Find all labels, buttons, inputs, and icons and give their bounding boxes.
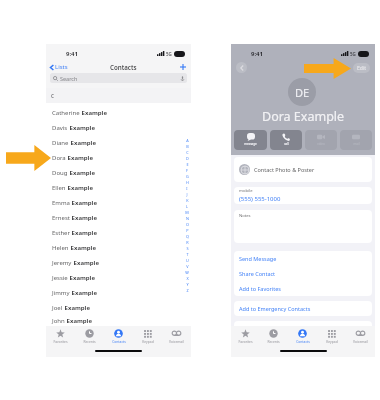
staticText: Contact Photo & Poster [254,166,315,173]
staticText: Example [66,154,93,162]
staticText: Contacts [110,63,137,71]
staticText: Emma [52,199,70,207]
staticText: Example [80,109,107,117]
staticText: X [186,276,189,281]
staticText: Ellen [52,184,66,192]
staticText: Keypad [142,339,154,343]
staticText: Recents [267,339,280,343]
staticText: Diane [52,139,69,147]
staticText: Example [70,214,97,222]
button[interactable]: Lists [49,62,69,72]
staticText: A [186,138,189,143]
staticText: E [186,162,189,167]
button[interactable]: Contacts [104,326,133,344]
button[interactable]: Favorites [46,326,75,344]
staticText: W [185,270,189,275]
button[interactable]: Back [236,62,247,73]
button[interactable]: video [305,130,337,150]
staticText: R [186,240,189,245]
staticText: Y [186,282,189,287]
button[interactable]: Add contact [178,62,188,72]
staticText: Joel [52,304,63,312]
button[interactable]: Ellen [46,180,191,195]
button[interactable]: Esther [46,225,191,240]
staticText: 9:41 [66,50,78,58]
staticText: Recents [83,339,96,343]
staticText: Keypad [326,339,338,343]
button[interactable]: Keypad [317,326,346,344]
button[interactable]: message [234,130,267,150]
staticText: call [284,142,289,146]
staticText: video [317,142,325,146]
button[interactable]: Voicemail [346,326,375,344]
staticText: Ernest [52,214,70,222]
button[interactable]: Catherine [46,105,191,120]
staticText: Notes [239,213,251,219]
staticText: John [52,317,65,325]
staticText: D [186,156,189,161]
button[interactable]: Jessie [46,270,191,285]
staticText: Davis [52,124,68,132]
button[interactable]: call [270,130,302,150]
staticText: Voicemail [353,339,368,343]
staticText: Q [186,234,189,239]
button[interactable]: mobile [234,187,372,204]
staticText: mobile [239,188,253,194]
button[interactable]: Favorites [231,326,259,344]
staticText: T [186,252,189,257]
button[interactable]: Share Contact [234,266,372,281]
staticText: O [186,222,189,227]
button[interactable]: Diane [46,135,191,150]
button[interactable]: Jeremy [46,255,191,270]
button[interactable]: Dora [46,150,191,165]
button[interactable]: Keypad [133,326,162,344]
button[interactable]: Recents [259,326,288,344]
staticText: G [186,174,189,179]
button[interactable]: Add to Favorites [234,281,372,296]
button[interactable]: Contacts [288,326,317,344]
button[interactable]: Ernest [46,210,191,225]
staticText: Voicemail [169,339,184,343]
button[interactable]: Jimmy [46,285,191,300]
staticText: K [186,198,189,203]
staticText: Example [70,199,97,207]
staticText: 5G [166,51,172,57]
staticText: Dora [52,154,66,162]
staticText: Example [70,289,97,297]
staticText: 5G [350,51,356,57]
staticText: Example [69,244,96,252]
button[interactable]: Voicemail [162,326,191,344]
button[interactable]: Joel [46,300,191,315]
staticText: Example [65,317,92,325]
button[interactable]: Helen [46,240,191,255]
staticText: J [186,192,188,197]
staticText: F [186,168,188,173]
staticText: Add to Favorites [239,285,281,292]
button[interactable]: Search [50,73,187,83]
button[interactable]: Edit [353,63,370,73]
staticText: Example [69,139,96,147]
staticText: Example [68,169,95,177]
staticText: Add to Emergency Contacts [239,305,311,312]
staticText: (555) 555-1000 [239,195,281,203]
button[interactable]: Emma [46,195,191,210]
staticText: Send Message [239,255,277,262]
staticText: P [186,228,189,233]
staticText: Z [186,288,189,293]
button[interactable]: Add to Emergency Contacts [234,301,372,316]
button[interactable]: Davis [46,120,191,135]
button[interactable]: Doug [46,165,191,180]
staticText: Edit [357,65,366,72]
button[interactable]: Notes [234,210,372,243]
button[interactable]: mail [340,130,372,150]
staticText: N [186,216,189,221]
button[interactable]: Contact Photo & Poster [234,157,372,182]
staticText: Jessie [52,274,68,282]
button[interactable]: Send Message [234,251,372,266]
staticText: L [186,204,188,209]
staticText: Catherine [52,109,80,117]
button[interactable]: John [46,315,191,326]
staticText: Favorites [53,339,68,343]
button[interactable]: Recents [75,326,104,344]
staticText: Example [68,124,95,132]
